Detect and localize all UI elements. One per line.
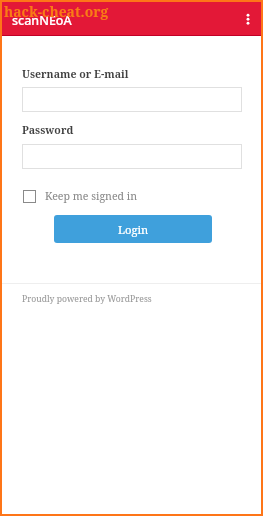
button[interactable]: Login [54, 215, 212, 243]
button[interactable]: More options [233, 4, 263, 34]
staticText: scanNEoA [12, 12, 72, 29]
staticText: Password [22, 123, 74, 137]
button[interactable] [22, 87, 242, 112]
button[interactable] [22, 144, 242, 169]
button[interactable]: Proudly powered by WordPress [22, 293, 152, 305]
staticText: Username or E-mail [22, 67, 129, 81]
button[interactable]: Keep me signed in [23, 189, 138, 203]
staticText: Login [118, 222, 149, 237]
staticText: hack-cheat.org [4, 2, 109, 21]
staticText: Keep me signed in [45, 189, 138, 203]
